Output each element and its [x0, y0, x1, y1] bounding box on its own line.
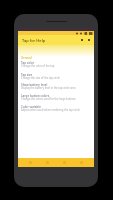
staticText: Change the colors used for the large but… [21, 97, 76, 101]
staticText: Change the size of the tap circle [21, 76, 60, 80]
staticText: Tap size [21, 73, 33, 77]
button[interactable]: Large button colors [18, 94, 94, 105]
button[interactable]: Tap size [18, 73, 94, 84]
button[interactable]: Nav item [26, 158, 35, 167]
button[interactable]: Color variable [18, 105, 94, 116]
staticText: General [21, 56, 32, 60]
staticText: Tap for Help [22, 38, 46, 43]
staticText: Large button colors [21, 94, 50, 98]
button[interactable]: Nav item [77, 158, 86, 167]
button[interactable]: Tap color [18, 61, 94, 72]
staticText: Change the color of the tap [21, 64, 55, 68]
button[interactable]: More options [85, 36, 92, 43]
button[interactable]: Nav item [60, 158, 69, 167]
staticText: Color variable [21, 105, 41, 109]
staticText: Display the battery level in the tap cir… [21, 86, 76, 90]
button[interactable]: Show battery level [18, 83, 94, 94]
staticText: Tap color [21, 61, 35, 65]
button[interactable]: Search [78, 36, 85, 43]
button[interactable]: Nav item [43, 158, 52, 167]
staticText: Show battery level [21, 83, 48, 87]
staticText: Adjust colors used when rendering the ta… [21, 108, 80, 112]
